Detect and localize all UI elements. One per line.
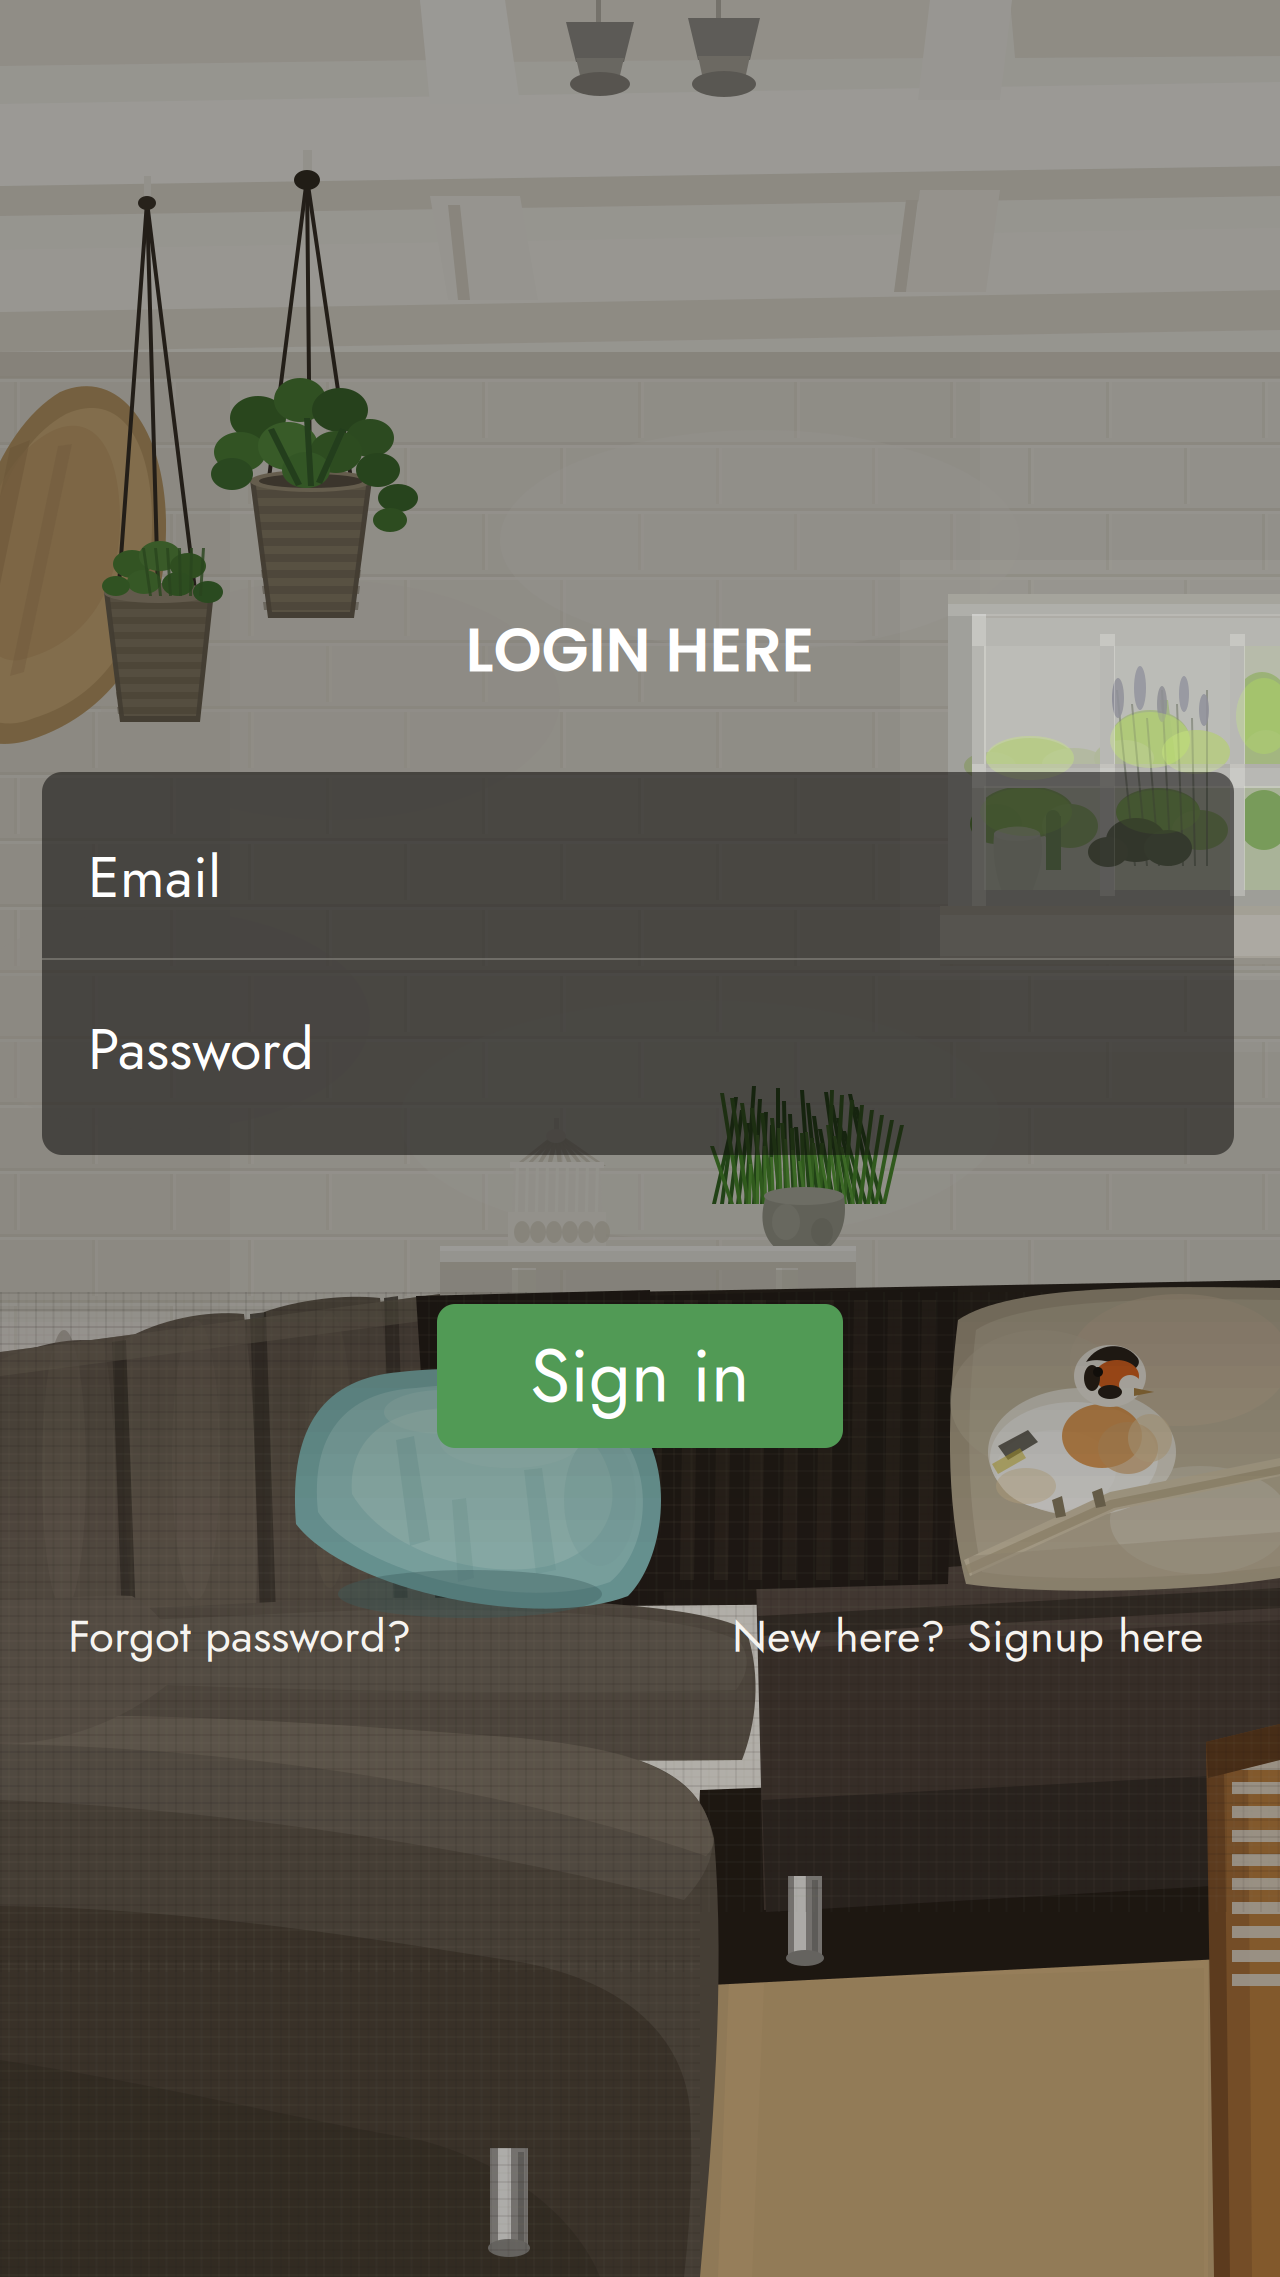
staticText: Signup here — [967, 1603, 1203, 1669]
button[interactable]: Forgot password? — [68, 1606, 411, 1666]
staticText: Forgot password? — [68, 1603, 411, 1669]
button[interactable]: Email — [42, 784, 1234, 970]
button[interactable]: Signup here — [967, 1603, 1203, 1669]
button[interactable]: Password — [42, 956, 1234, 1142]
staticText: LOGIN HERE — [465, 607, 814, 693]
button[interactable]: Sign in — [437, 1304, 843, 1448]
staticText: New here? — [732, 1603, 945, 1669]
staticText: Email — [88, 836, 221, 918]
staticText: Sign in — [530, 1323, 750, 1429]
staticText: Password — [88, 1008, 314, 1090]
